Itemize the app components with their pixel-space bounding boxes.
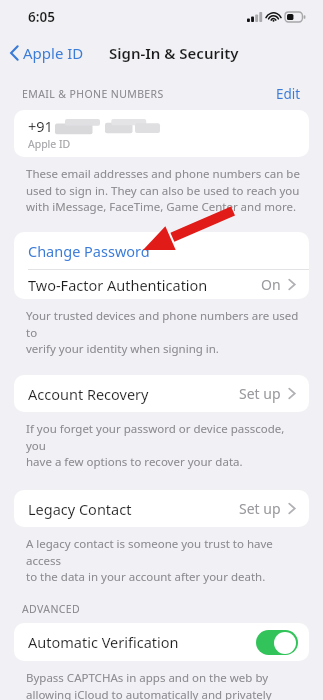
staticText: Your trusted devices and phone numbers a… [26,308,303,356]
button[interactable]: Two-Factor Authentication [14,270,309,299]
staticText: Two-Factor Authentication [28,275,208,295]
staticText: Set up [239,384,281,403]
button[interactable]: +91 [14,110,309,157]
staticText: ADVANCED [22,602,81,616]
button[interactable]: Edit [276,85,301,103]
staticText: Legacy Contact [28,499,132,519]
staticText: Apple ID [28,137,71,151]
staticText: On [261,275,281,294]
staticText: Sign-In & Security [109,43,239,63]
staticText: EMAIL & PHONE NUMBERS [22,87,164,101]
staticText: If you forget your password or device pa… [26,421,303,469]
staticText: These email addresses and phone numbers … [26,166,300,214]
staticText: +91 [28,116,53,136]
button[interactable]: Account Recovery [14,375,309,412]
button[interactable]: Change Password [14,232,309,269]
staticText: Change Password [28,241,150,261]
staticText: Bypass CAPTCHAs in apps and on the web b… [26,670,303,700]
button[interactable]: Apple ID [0,39,90,67]
staticText: A legacy contact is someone you trust to… [26,536,303,584]
staticText: Edit [276,85,301,103]
button[interactable]: Automatic Verification toggle, on [256,630,298,655]
staticText: Set up [239,499,281,518]
button[interactable]: Legacy Contact [14,490,309,527]
button[interactable]: Automatic Verification [14,623,309,661]
staticText: Automatic Verification [28,632,179,652]
staticText: 6:05 [28,8,55,26]
staticText: Apple ID [23,43,84,63]
staticText: Account Recovery [28,384,149,404]
